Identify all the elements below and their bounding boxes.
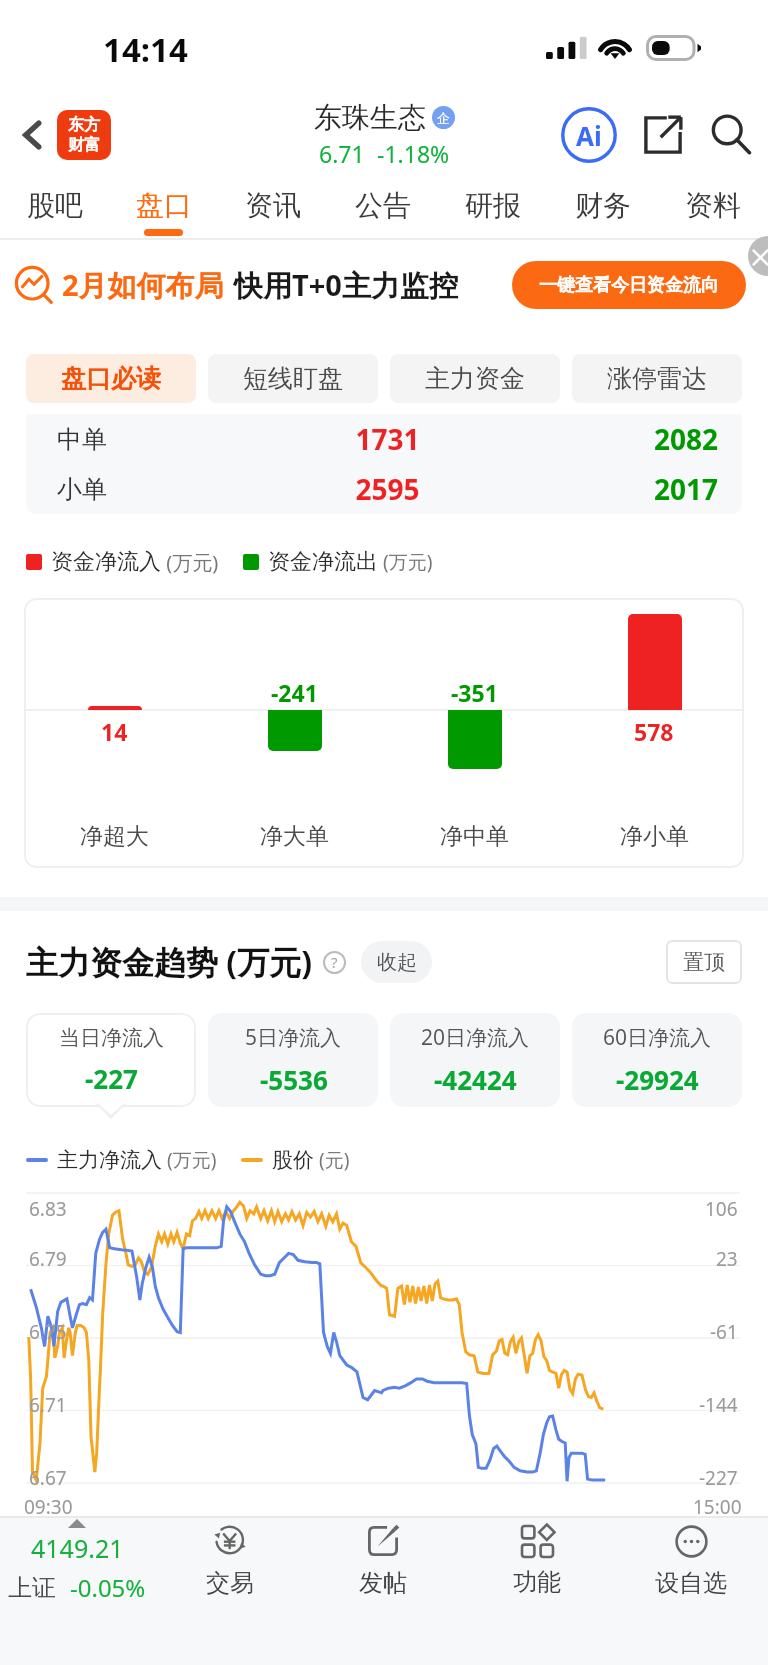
- button[interactable]: Close advertisement: [748, 236, 768, 276]
- staticText: 交易: [206, 1568, 254, 1598]
- staticText: -351: [451, 677, 498, 708]
- button[interactable]: AI assistant: [558, 104, 620, 166]
- staticText: -5536: [260, 1062, 328, 1097]
- staticText: -0.05%: [70, 1571, 146, 1604]
- button[interactable]: 涨停雷达: [572, 354, 742, 403]
- button[interactable]: 60日净流入: [572, 1013, 742, 1107]
- staticText: 09:30: [24, 1494, 73, 1520]
- button[interactable]: East Money home: [57, 110, 111, 160]
- staticText: 15:00: [693, 1494, 742, 1520]
- staticText: 东珠生态: [314, 100, 426, 135]
- staticText: 6.75: [29, 1319, 67, 1345]
- button[interactable]: 一键查看今日资金流向: [512, 261, 746, 309]
- button[interactable]: 短线盯盘: [208, 354, 378, 403]
- staticText: -1.18%: [377, 138, 450, 169]
- staticText: 净大单: [260, 822, 329, 851]
- button[interactable]: 交易: [153, 1518, 306, 1610]
- staticText: 财富: [68, 135, 100, 155]
- staticText: 资金净流出: [268, 548, 378, 576]
- staticText: 盘口必读: [61, 363, 161, 394]
- button[interactable]: 财务: [548, 178, 658, 240]
- staticText: 1731: [145, 420, 630, 458]
- staticText: (万元): [378, 549, 433, 575]
- staticText: 快用T+0主力监控: [234, 265, 458, 305]
- staticText: -29924: [616, 1062, 699, 1097]
- staticText: 短线盯盘: [243, 363, 343, 394]
- staticText: 净小单: [620, 822, 689, 851]
- button[interactable]: 研报: [438, 178, 548, 240]
- button[interactable]: Help: [322, 950, 346, 974]
- staticText: 中单: [57, 424, 107, 455]
- button[interactable]: 资料: [658, 178, 768, 240]
- button[interactable]: 盘口必读: [26, 354, 196, 403]
- staticText: 置顶: [683, 949, 725, 975]
- button[interactable]: 功能: [460, 1518, 614, 1610]
- staticText: 上证: [8, 1573, 56, 1603]
- staticText: (元): [314, 1147, 350, 1173]
- staticText: -227: [699, 1465, 738, 1491]
- button[interactable]: 20日净流入: [390, 1013, 560, 1107]
- button[interactable]: 公告: [328, 178, 438, 240]
- staticText: 106: [705, 1196, 738, 1222]
- staticText: 2017: [592, 470, 718, 508]
- staticText: 股吧: [27, 188, 83, 223]
- button[interactable]: Share: [634, 106, 692, 164]
- staticText: (万元): [161, 549, 219, 576]
- staticText: 6.71: [319, 138, 365, 169]
- staticText: 2082: [592, 420, 718, 458]
- staticText: 设自选: [655, 1568, 727, 1598]
- button[interactable]: 小单: [26, 464, 742, 514]
- staticText: 当日净流入: [59, 1025, 164, 1051]
- staticText: 发帖: [359, 1568, 407, 1598]
- staticText: -227: [85, 1061, 138, 1096]
- staticText: ?: [331, 952, 338, 972]
- staticText: 企: [437, 110, 450, 126]
- staticText: -241: [271, 677, 318, 708]
- staticText: Ai: [576, 118, 602, 153]
- staticText: (万元): [162, 1147, 217, 1173]
- staticText: 盘口: [136, 188, 192, 223]
- button[interactable]: 当日净流入: [26, 1013, 196, 1107]
- staticText: 60日净流入: [603, 1023, 712, 1052]
- button[interactable]: 主力资金: [390, 354, 560, 403]
- button[interactable]: Search: [702, 106, 760, 164]
- staticText: 主力净流入: [57, 1147, 162, 1173]
- staticText: 资讯: [245, 188, 301, 223]
- staticText: -61: [710, 1319, 738, 1345]
- staticText: 6.67: [29, 1465, 67, 1491]
- button[interactable]: 5日净流入: [208, 1013, 378, 1107]
- staticText: 资金净流入: [51, 548, 161, 576]
- staticText: -42424: [434, 1062, 517, 1097]
- staticText: 主力资金趋势 (万元): [26, 940, 313, 984]
- button[interactable]: 置顶: [666, 940, 742, 984]
- staticText: 23: [716, 1246, 738, 1272]
- staticText: 2595: [145, 470, 630, 508]
- staticText: 股价: [272, 1147, 314, 1173]
- staticText: 财务: [575, 188, 631, 223]
- button[interactable]: 4149.21: [0, 1518, 153, 1610]
- staticText: 净超大: [80, 822, 149, 851]
- staticText: 功能: [513, 1567, 561, 1597]
- button[interactable]: 资讯: [218, 178, 328, 240]
- staticText: 东方: [68, 115, 100, 135]
- staticText: 涨停雷达: [607, 363, 707, 394]
- staticText: 4149.21: [31, 1531, 124, 1565]
- staticText: 5日净流入: [245, 1023, 342, 1052]
- button[interactable]: 中单: [26, 414, 742, 464]
- button[interactable]: Back: [6, 109, 58, 161]
- staticText: 主力资金: [425, 363, 525, 394]
- button[interactable]: 发帖: [306, 1518, 460, 1610]
- button[interactable]: 盘口: [109, 178, 218, 240]
- staticText: 14: [101, 716, 128, 747]
- staticText: 一键查看今日资金流向: [539, 274, 719, 297]
- staticText: 公告: [355, 188, 411, 223]
- staticText: 20日净流入: [421, 1023, 530, 1052]
- staticText: 小单: [57, 474, 107, 505]
- staticText: 6.71: [29, 1392, 67, 1418]
- staticText: 资料: [685, 188, 741, 223]
- button[interactable]: 股吧: [0, 178, 109, 240]
- staticText: 研报: [465, 188, 521, 223]
- button[interactable]: 收起: [361, 941, 432, 983]
- button[interactable]: 设自选: [614, 1518, 768, 1610]
- staticText: 578: [634, 716, 674, 747]
